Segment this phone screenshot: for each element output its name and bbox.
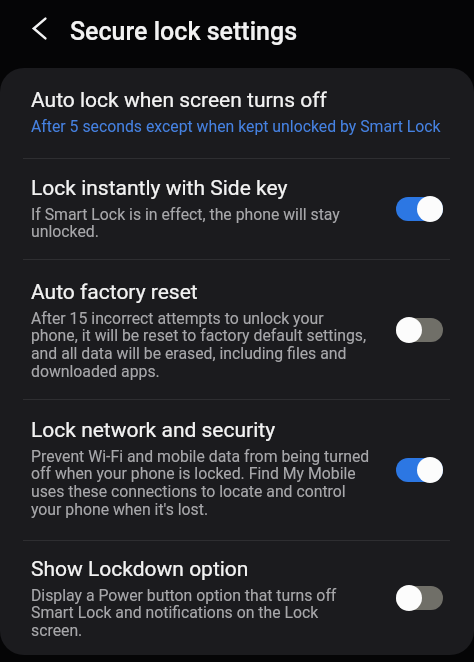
button[interactable]: Auto lock when screen turns off	[0, 68, 474, 158]
button[interactable]: Lock instantly with Side key	[0, 159, 474, 259]
button[interactable]	[15, 4, 63, 52]
staticText: After 15 incorrect attempts to unlock yo…	[31, 309, 367, 381]
button[interactable]: Show Lockdown option	[0, 541, 474, 655]
staticText: Auto factory reset	[31, 280, 198, 305]
button[interactable]: Auto factory reset	[0, 260, 474, 399]
staticText: Prevent Wi-Fi and mobile data from being…	[31, 447, 370, 519]
staticText: Auto lock when screen turns off	[31, 88, 327, 113]
button[interactable]	[396, 457, 443, 483]
button[interactable]	[396, 317, 443, 343]
staticText: After 5 seconds except when kept unlocke…	[31, 117, 441, 136]
staticText: Lock network and security	[31, 418, 276, 443]
staticText: If Smart Lock is in effect, the phone wi…	[31, 205, 340, 241]
staticText: Display a Power button option that turns…	[31, 586, 337, 640]
staticText: Lock instantly with Side key	[31, 176, 288, 201]
button[interactable]: Lock network and security	[0, 400, 474, 540]
button[interactable]	[396, 585, 443, 611]
button[interactable]	[396, 196, 443, 222]
staticText: Secure lock settings	[70, 17, 298, 46]
staticText: Show Lockdown option	[31, 557, 249, 582]
